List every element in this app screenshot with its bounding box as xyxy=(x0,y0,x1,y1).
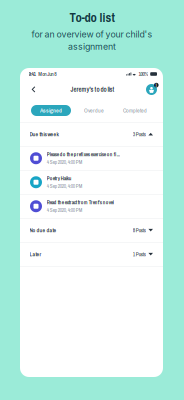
staticText: Jeremy's to do list xyxy=(70,85,114,94)
staticText: Please do the prefixes exercise on fi... xyxy=(47,151,120,158)
button[interactable]: Poetry Haiku xyxy=(20,170,163,194)
staticText: Read the extract from Trent's novel xyxy=(47,199,114,206)
staticText: No due date xyxy=(29,226,56,234)
button[interactable]: Please do the prefixes exercise on fi... xyxy=(20,146,163,170)
staticText: 4 Sep 2020, 4:00 PM xyxy=(47,158,83,165)
button[interactable]: Read the extract from Trent's novel xyxy=(20,194,163,218)
staticText: for an overview of your child's xyxy=(31,29,152,40)
button[interactable]: Later xyxy=(20,242,163,266)
button[interactable]: No due date xyxy=(20,218,163,242)
staticText: Assigned xyxy=(40,106,62,114)
staticText: Completed xyxy=(123,106,147,114)
staticText: Poetry Haiku xyxy=(47,175,72,182)
button[interactable]: Completed xyxy=(117,105,153,116)
staticText: 8 Posts xyxy=(133,227,146,234)
staticText: assignment xyxy=(68,41,116,52)
staticText: Due this week xyxy=(29,130,58,138)
button[interactable]: Overdue xyxy=(76,105,112,116)
staticText: Overdue xyxy=(84,106,104,114)
button[interactable]: Back xyxy=(27,80,40,99)
staticText: 1 xyxy=(155,83,157,88)
staticText: 1 Posts xyxy=(133,251,146,258)
staticText: Mon Jun 8 xyxy=(38,70,56,78)
staticText: 4 Sep 2020, 4:00 PM xyxy=(47,206,83,213)
staticText: 9:41 xyxy=(28,70,35,78)
button[interactable]: Profile xyxy=(145,80,158,99)
staticText: 4 Sep 2020, 4:00 PM xyxy=(47,182,83,189)
button[interactable]: Assigned xyxy=(31,105,71,116)
button[interactable]: Due this week xyxy=(20,122,163,146)
staticText: 100% xyxy=(138,70,148,78)
staticText: 3 Posts xyxy=(133,131,146,138)
staticText: To-do list xyxy=(69,9,114,26)
staticText: Later xyxy=(29,250,41,258)
